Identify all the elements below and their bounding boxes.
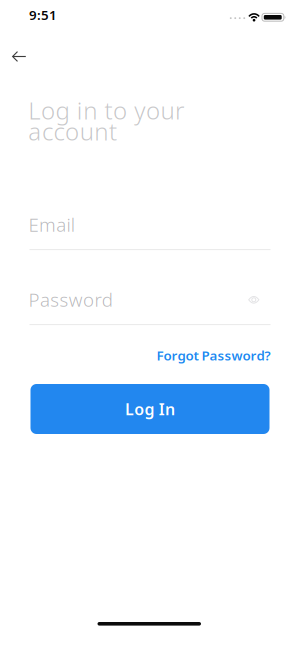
staticText: 9:51: [29, 6, 57, 24]
staticText: account: [28, 115, 117, 147]
button[interactable]: Show password: [244, 291, 264, 308]
button[interactable]: Log In: [30, 384, 269, 434]
staticText: Password: [29, 287, 113, 312]
staticText: Log In: [125, 398, 175, 420]
button[interactable]: Back: [0, 0, 26, 62]
button[interactable]: Forgot Password?: [156, 346, 270, 364]
staticText: Email: [29, 212, 75, 237]
staticText: Log in to your: [28, 94, 184, 126]
staticText: Forgot Password?: [156, 346, 270, 364]
